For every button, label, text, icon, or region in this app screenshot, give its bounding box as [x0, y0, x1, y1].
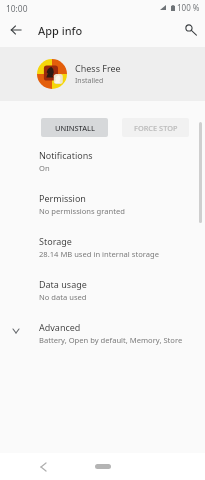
button[interactable]: Permission	[0, 187, 205, 230]
staticText: Advanced	[39, 321, 81, 333]
button[interactable]: Back	[3, 17, 29, 43]
staticText: Installed	[75, 76, 104, 86]
button[interactable]: Home	[95, 464, 111, 469]
staticText: App info	[38, 23, 83, 38]
button[interactable]: Advanced	[0, 316, 205, 359]
staticText: Battery, Open by default, Memory, Store	[39, 335, 183, 345]
staticText: Chess Free	[75, 62, 121, 74]
button[interactable]: FORCE STOP	[122, 118, 189, 137]
button[interactable]: Data usage	[0, 273, 205, 316]
button[interactable]: Notifications	[0, 144, 205, 187]
staticText: FORCE STOP	[134, 123, 178, 133]
staticText: Data usage	[39, 278, 87, 290]
staticText: 10:00	[6, 3, 28, 14]
staticText: Notifications	[39, 149, 93, 161]
staticText: Permission	[39, 192, 86, 204]
button[interactable]: Search	[178, 17, 204, 43]
staticText: On	[39, 163, 50, 173]
button[interactable]: UNINSTALL	[41, 118, 108, 137]
button[interactable]: Storage	[0, 230, 205, 273]
staticText: 100 %	[177, 2, 200, 13]
button[interactable]: Back	[32, 456, 54, 478]
staticText: 28.14 MB used in internal storage	[39, 249, 159, 259]
staticText: No data used	[39, 292, 87, 302]
staticText: No permissions granted	[39, 206, 125, 216]
staticText: Storage	[39, 235, 72, 247]
staticText: UNINSTALL	[55, 123, 95, 133]
